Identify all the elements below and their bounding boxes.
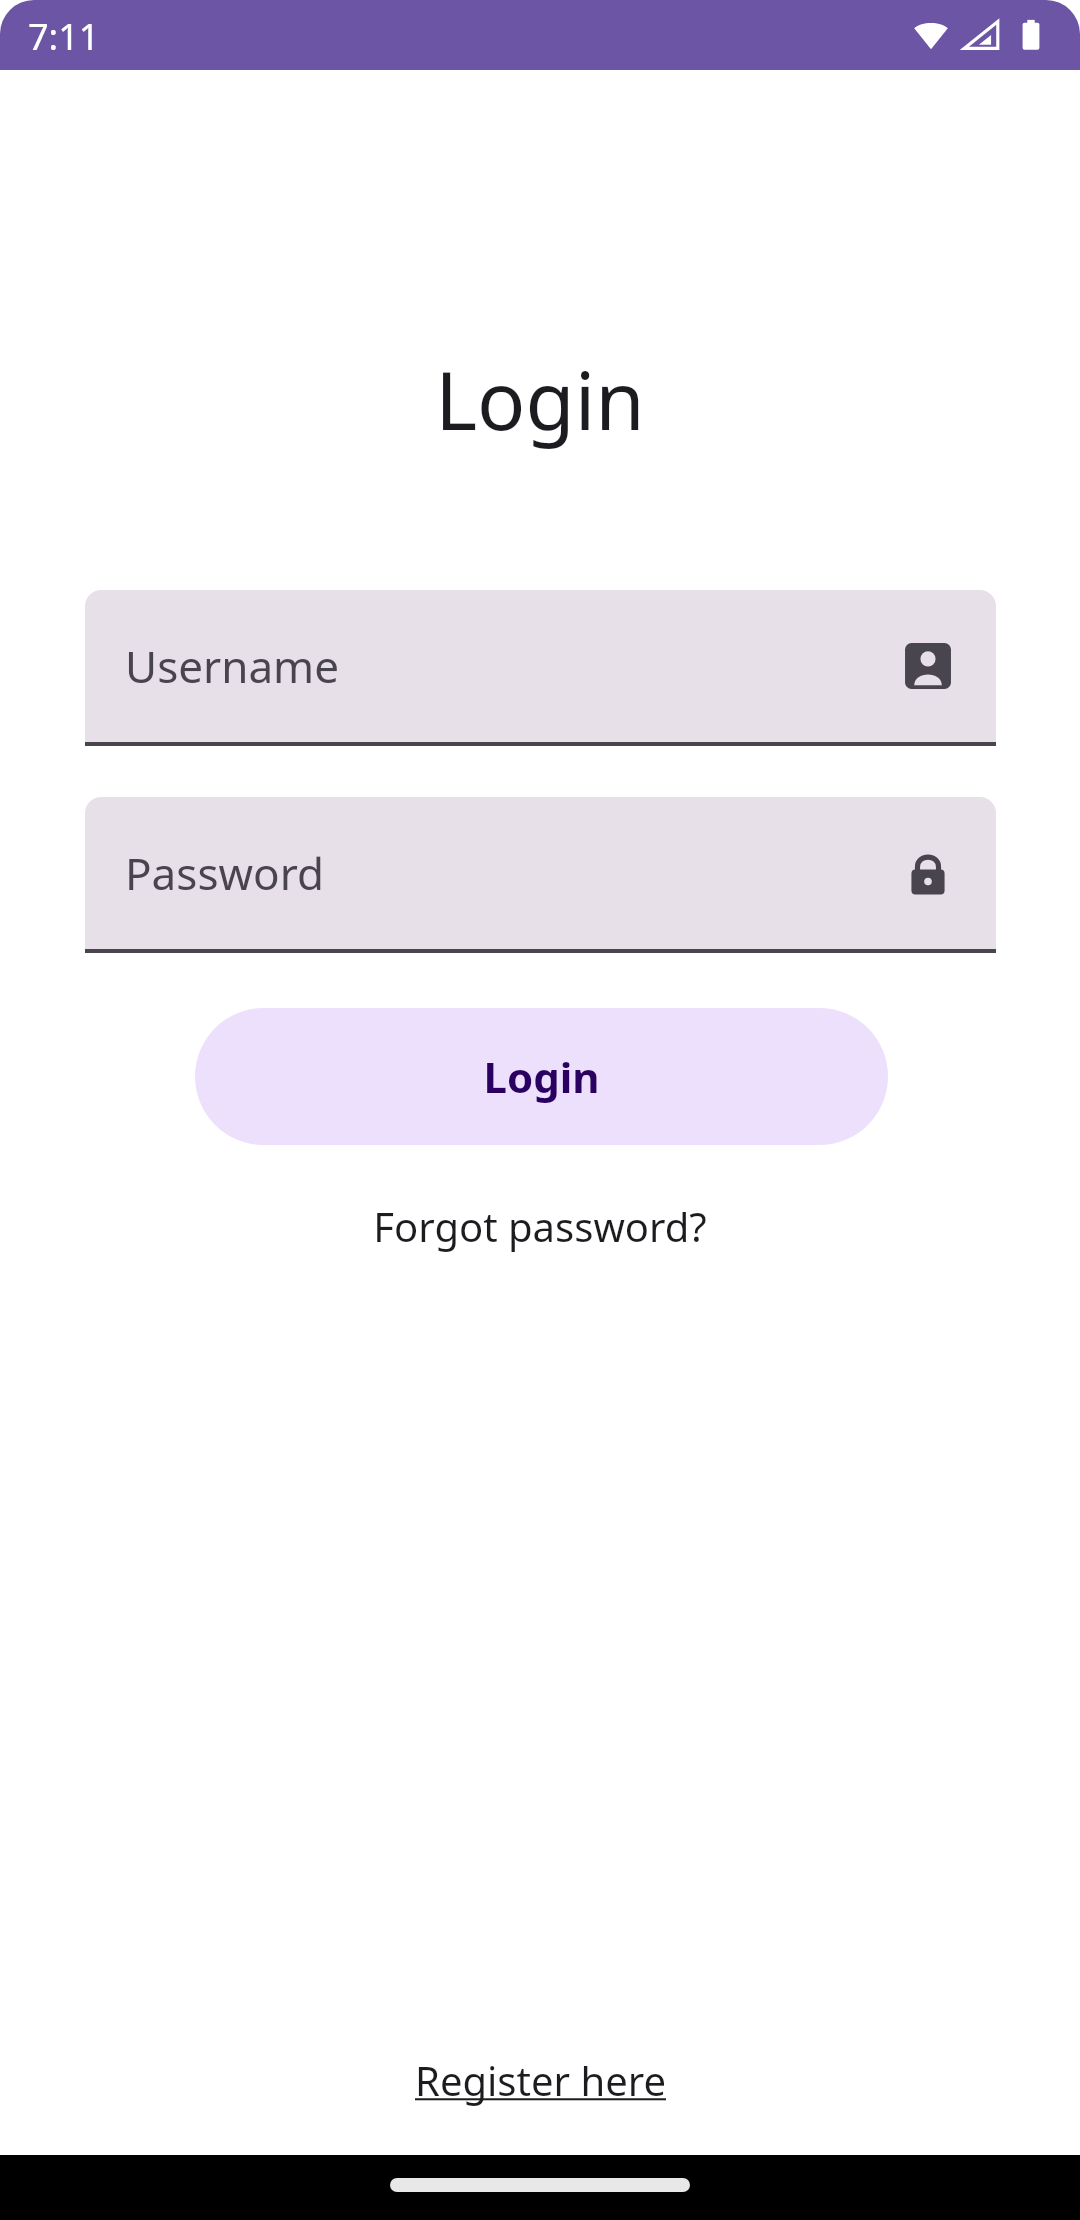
button[interactable]: Register here — [403, 2047, 678, 2113]
staticText: Forgot password? — [373, 1199, 707, 1253]
button[interactable]: Password — [85, 797, 996, 953]
staticText: Register here — [415, 2053, 666, 2107]
staticText: Password — [125, 843, 325, 903]
other: Account — [900, 638, 956, 694]
staticText: Login — [435, 344, 645, 453]
staticText: Username — [125, 636, 340, 696]
button[interactable]: Username — [85, 590, 996, 746]
button[interactable]: Forgot password? — [361, 1193, 719, 1259]
button[interactable]: Login — [195, 1008, 888, 1145]
staticText: Login — [483, 1048, 600, 1105]
staticText: 7:11 — [28, 12, 100, 61]
other: Password — [900, 845, 956, 901]
